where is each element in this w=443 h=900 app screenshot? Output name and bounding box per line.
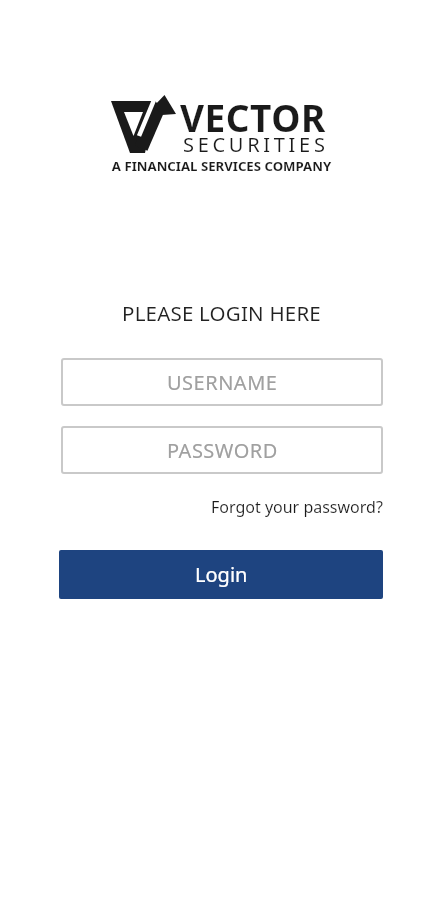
- staticText: PASSWORD: [167, 437, 278, 464]
- staticText: Login: [195, 561, 248, 588]
- staticText: PLEASE LOGIN HERE: [0, 299, 443, 327]
- button[interactable]: Forgot your password?: [211, 496, 383, 518]
- staticText: A FINANCIAL SERVICES COMPANY: [0, 157, 443, 175]
- button[interactable]: Login: [59, 550, 383, 599]
- button[interactable]: USERNAME: [61, 358, 383, 406]
- staticText: USERNAME: [167, 369, 278, 396]
- button[interactable]: PASSWORD: [61, 426, 383, 474]
- staticText: SECURITIES: [183, 131, 329, 158]
- staticText: VECTOR: [180, 92, 326, 142]
